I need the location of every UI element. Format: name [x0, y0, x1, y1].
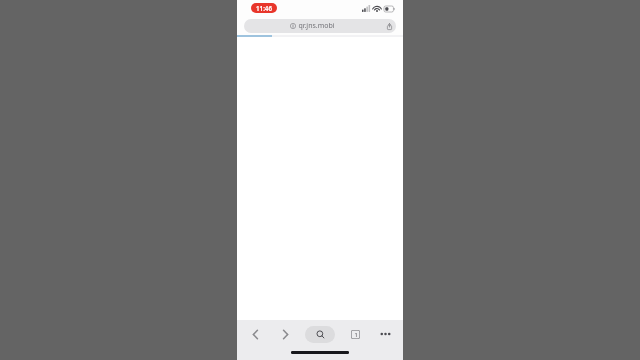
button[interactable]: Back [245, 322, 265, 346]
staticText: 11:46 [256, 4, 272, 12]
button[interactable]: More [375, 322, 395, 346]
button[interactable]: Search [305, 326, 335, 343]
button[interactable]: Share [382, 19, 396, 33]
staticText: 1 [354, 331, 358, 338]
button[interactable]: Forward [275, 322, 295, 346]
staticText: qr.jns.mobi [298, 21, 335, 31]
button[interactable]: qr.jns.mobi [244, 19, 396, 33]
button[interactable]: Tabs [345, 322, 365, 346]
